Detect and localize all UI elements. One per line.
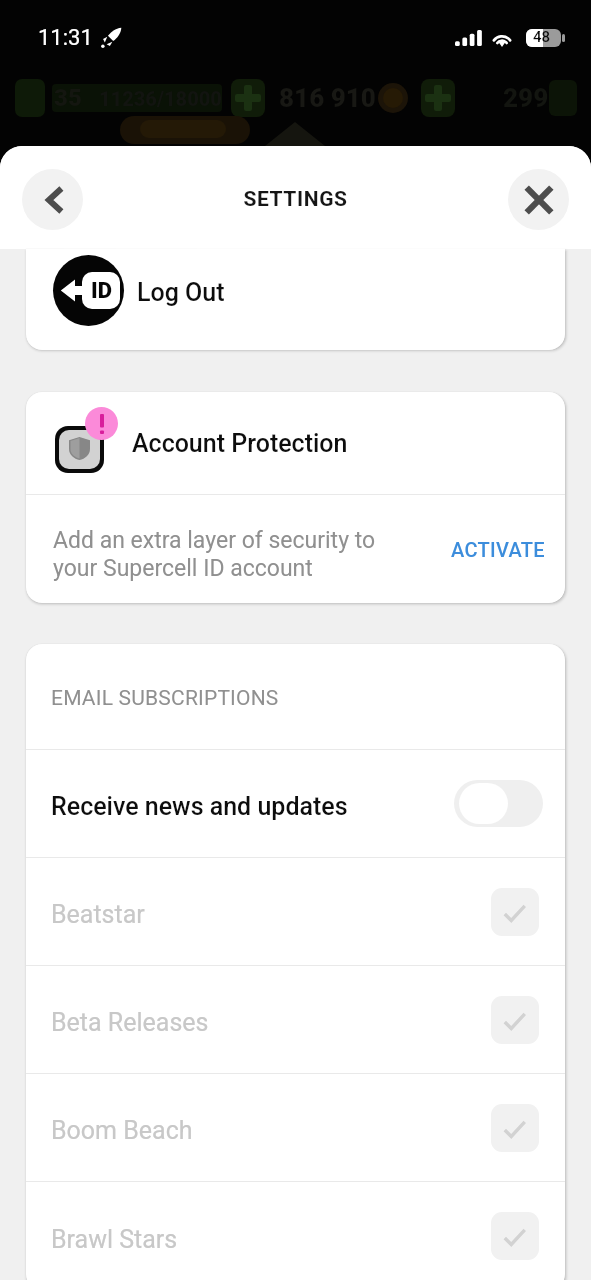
button[interactable]: Beta Releases [26,966,565,1073]
staticText: Account Protection [132,429,348,458]
staticText: Log Out [137,278,225,307]
staticText: EMAIL SUBSCRIPTIONS [51,686,279,711]
button[interactable]: Close [508,169,569,230]
button[interactable]: ID [26,249,565,350]
staticText: Add an extra layer of security to your S… [53,527,376,582]
staticText: 11:31 [38,25,93,51]
button[interactable]: Receive news and updates [26,750,565,857]
staticText: 816 910 [279,83,376,113]
staticText: Receive news and updates [51,792,348,821]
staticText: 11236/18000 [99,87,222,110]
staticText: ACTIVATE [451,538,545,561]
button[interactable]: Boom Beach [26,1074,565,1181]
staticText: 48 [533,28,551,46]
button[interactable]: Back [22,169,83,230]
button[interactable]: Beatstar [26,858,565,965]
button[interactable]: ACTIVATE [451,538,545,561]
staticText: 35 [54,84,82,112]
button[interactable]: Account Protection [26,392,565,494]
button[interactable]: Brawl Stars [26,1182,565,1280]
staticText: Beatstar [51,900,145,929]
staticText: ID [91,278,112,304]
staticText: 299 [503,83,549,113]
staticText: Brawl Stars [51,1225,178,1254]
staticText: Beta Releases [51,1008,209,1037]
staticText: Boom Beach [51,1116,193,1145]
staticText: SETTINGS [243,187,348,212]
